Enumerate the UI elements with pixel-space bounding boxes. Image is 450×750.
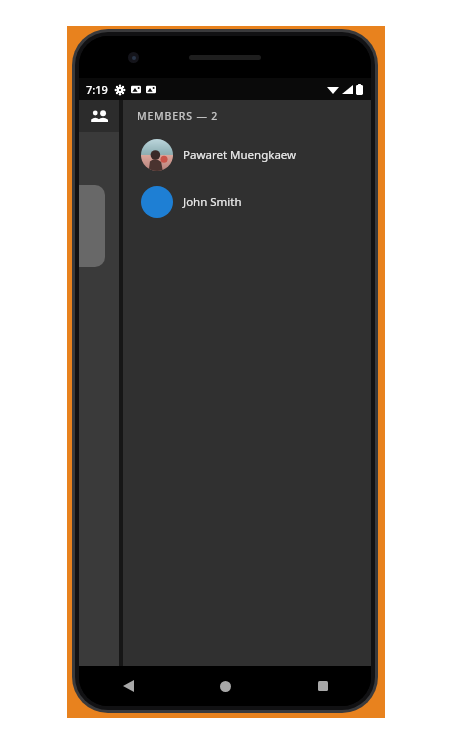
staticText: MEMBERS — 2 xyxy=(137,109,219,123)
button[interactable]: Members xyxy=(79,100,119,132)
staticText: Pawaret Muengkaew xyxy=(183,147,297,163)
staticText: John Smith xyxy=(183,194,242,210)
staticText: 7:19 xyxy=(86,82,108,97)
button[interactable]: Recents xyxy=(274,666,371,706)
button[interactable]: John Smith xyxy=(123,183,371,221)
button[interactable]: Back xyxy=(79,666,177,706)
button[interactable]: Channel xyxy=(79,185,105,267)
button[interactable]: Home xyxy=(177,666,274,706)
button[interactable]: Pawaret Muengkaew xyxy=(123,136,371,174)
